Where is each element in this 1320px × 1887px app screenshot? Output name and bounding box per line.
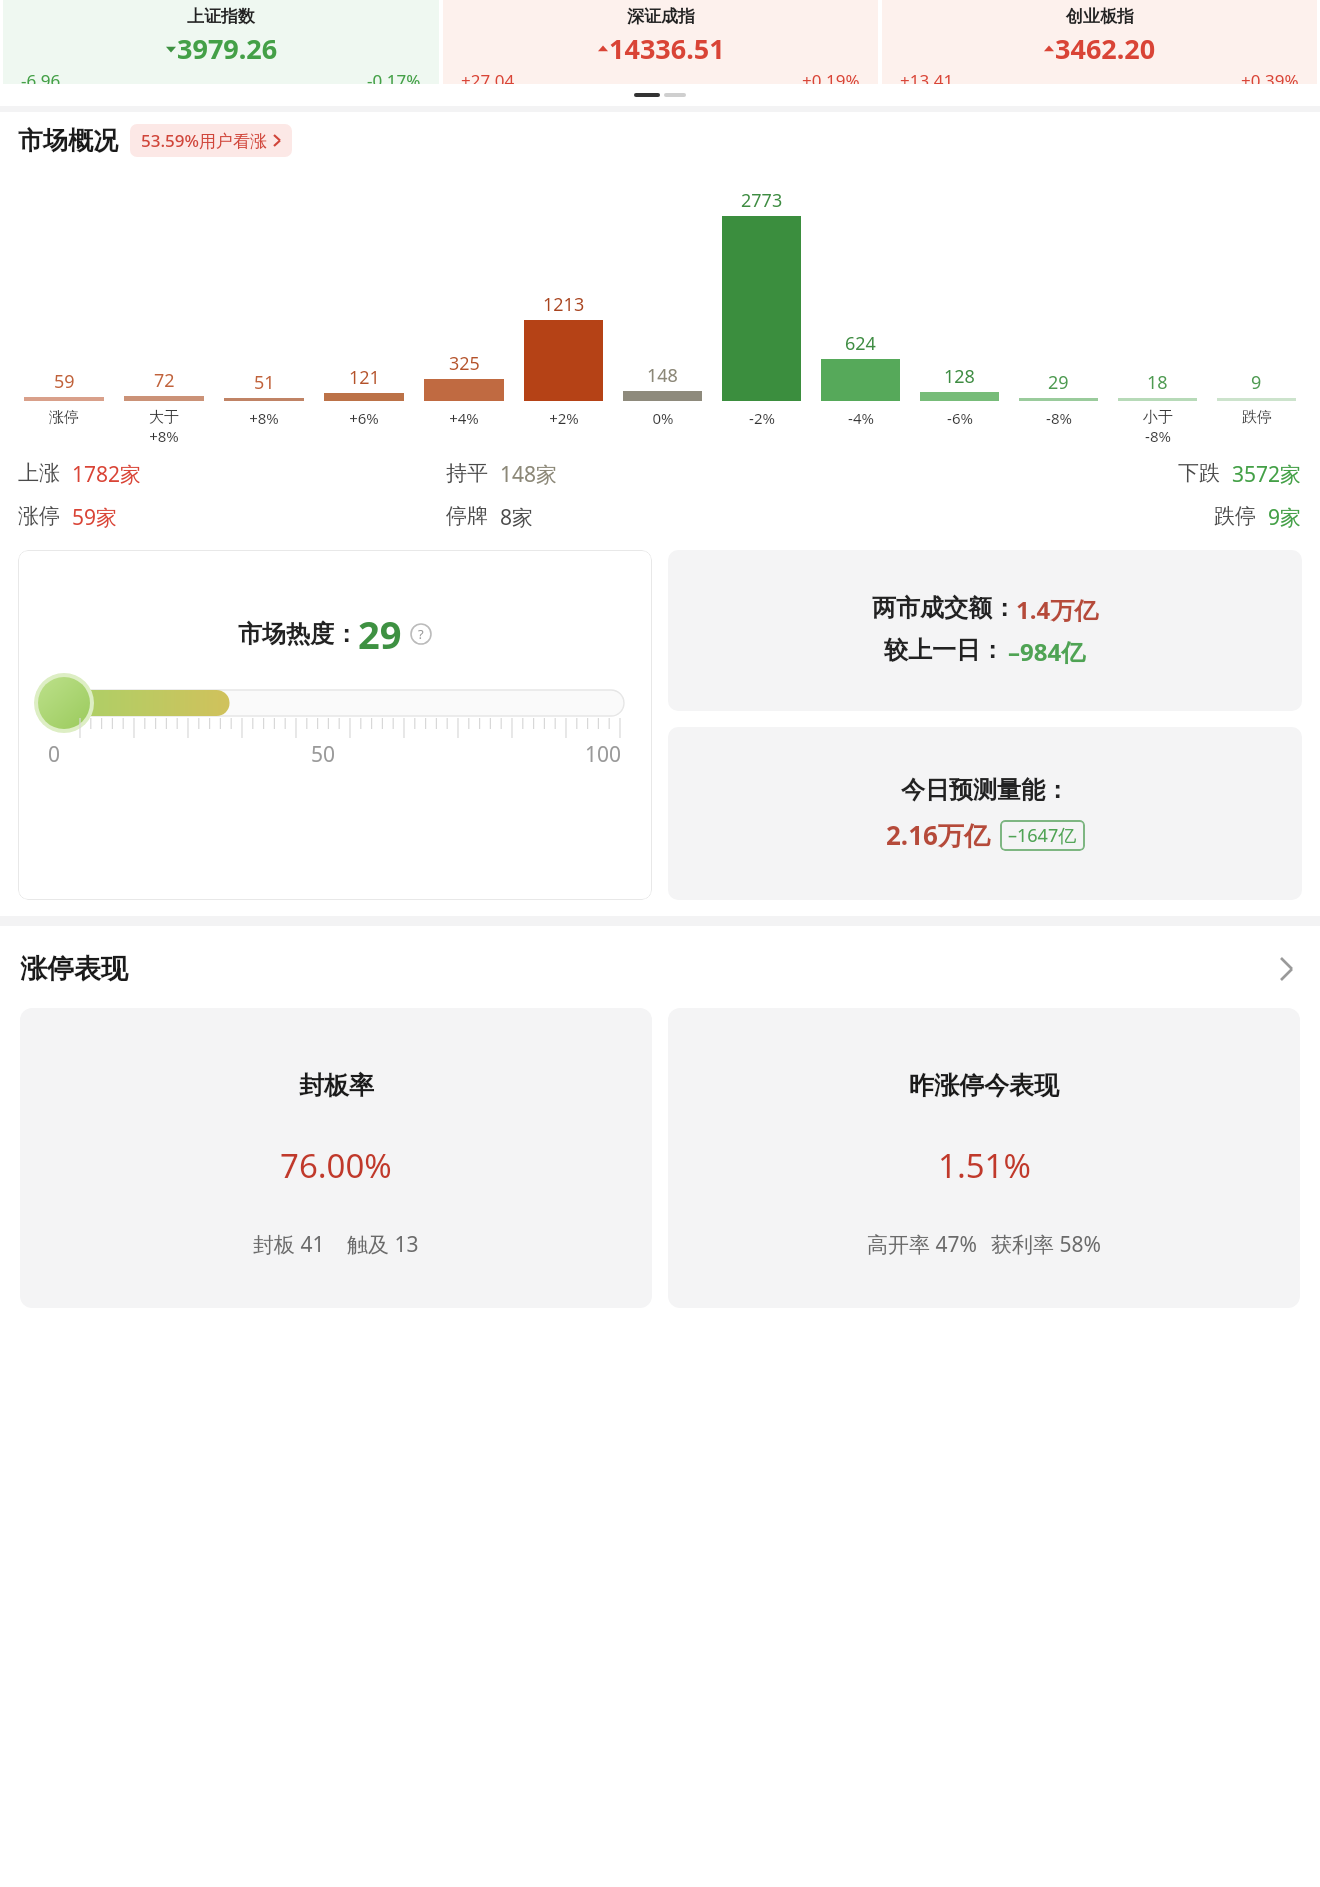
button[interactable]: 涨停表现 xyxy=(0,952,1320,986)
staticText: 0 xyxy=(48,740,61,769)
staticText: +6% xyxy=(349,408,379,428)
staticText: -6.96 xyxy=(21,69,61,84)
staticText: 128 xyxy=(944,364,975,389)
button[interactable]: 创业板指 xyxy=(882,0,1317,84)
staticText: +0.19% xyxy=(802,69,860,84)
staticText: 72 xyxy=(154,368,175,393)
staticText: -8% xyxy=(1046,408,1072,428)
staticText: -0.17% xyxy=(367,69,421,84)
button[interactable]: 今日预测量能： xyxy=(668,727,1302,900)
staticText: 51 xyxy=(254,370,275,395)
staticText: 8家 xyxy=(500,503,534,532)
staticText: 涨停 xyxy=(18,503,60,529)
button[interactable]: 封板率 xyxy=(20,1008,652,1308)
staticText: 1782家 xyxy=(72,460,142,489)
button[interactable]: 两市成交额： xyxy=(668,550,1302,711)
staticText: 53.59%用户看涨 xyxy=(141,129,268,152)
button[interactable]: 53.59%用户看涨 xyxy=(130,124,292,157)
staticText: 今日预测量能： xyxy=(901,775,1069,805)
staticText: 148家 xyxy=(500,460,558,489)
staticText: 325 xyxy=(449,351,480,376)
staticText: 29 xyxy=(358,608,402,660)
staticText: 59家 xyxy=(72,503,118,532)
staticText: 昨涨停今表现 xyxy=(909,1070,1059,1101)
button[interactable]: 说明 xyxy=(410,623,432,645)
staticText: 2773 xyxy=(741,188,783,213)
staticText: 3979.26 xyxy=(177,30,278,67)
staticText: 上涨 xyxy=(18,460,60,486)
staticText: -4% xyxy=(848,408,874,428)
staticText: +4% xyxy=(449,408,479,428)
staticText: 9家 xyxy=(1268,503,1302,532)
button[interactable]: 市场热度： xyxy=(18,550,652,900)
staticText: +27.04 xyxy=(461,69,515,84)
staticText: 跌停 xyxy=(1214,503,1256,529)
staticText: 触及 13 xyxy=(347,1230,419,1259)
staticText: +13.41 xyxy=(900,69,954,84)
staticText: 2.16万亿 xyxy=(886,817,990,853)
staticText: 59 xyxy=(54,369,75,394)
staticText: 市场热度： xyxy=(238,619,358,649)
staticText: 3572家 xyxy=(1232,460,1302,489)
staticText: 1.4万亿 xyxy=(1016,593,1099,626)
staticText: -6% xyxy=(947,408,973,428)
other: 查看更多 xyxy=(1272,955,1300,983)
staticText: 1213 xyxy=(543,292,585,317)
staticText: 1.51% xyxy=(938,1143,1031,1188)
staticText: –1647亿 xyxy=(1008,823,1077,848)
staticText: 封板 41 xyxy=(253,1230,325,1259)
staticText: 停牌 xyxy=(446,503,488,529)
staticText: 121 xyxy=(349,365,380,390)
staticText: 持平 xyxy=(446,460,488,486)
staticText: –984亿 xyxy=(1008,635,1086,668)
staticText: 封板率 xyxy=(299,1070,374,1101)
staticText: 跌停 xyxy=(1242,408,1272,427)
staticText: 市场概况 xyxy=(18,125,118,156)
staticText: -2% xyxy=(749,408,775,428)
staticText: 创业板指 xyxy=(1066,6,1134,27)
staticText: 下跌 xyxy=(1178,460,1220,486)
staticText: 76.00% xyxy=(280,1143,392,1188)
button[interactable]: 昨涨停今表现 xyxy=(668,1008,1300,1308)
staticText: 3462.20 xyxy=(1055,30,1156,67)
staticText: 100 xyxy=(585,740,622,769)
staticText: 小于 -8% xyxy=(1143,408,1173,446)
staticText: 9 xyxy=(1251,370,1262,395)
staticText: 涨停 xyxy=(49,408,79,427)
staticText: 18 xyxy=(1147,370,1168,395)
button[interactable]: 上证指数 xyxy=(3,0,439,84)
staticText: +0.39% xyxy=(1241,69,1299,84)
staticText: 148 xyxy=(647,363,678,388)
staticText: 29 xyxy=(1048,370,1069,395)
staticText: 两市成交额： xyxy=(872,593,1016,623)
staticText: +2% xyxy=(549,408,579,428)
staticText: 大于 +8% xyxy=(149,408,179,446)
staticText: 涨停表现 xyxy=(20,952,128,986)
button[interactable]: 深证成指 xyxy=(443,0,878,84)
staticText: ? xyxy=(418,625,424,643)
staticText: 50 xyxy=(311,740,336,769)
staticText: 较上一日： xyxy=(884,635,1004,665)
staticText: 上证指数 xyxy=(187,6,255,27)
staticText: 0% xyxy=(652,408,674,428)
staticText: 获利率 58% xyxy=(991,1230,1101,1259)
staticText: 高开率 47% xyxy=(867,1230,977,1259)
staticText: 624 xyxy=(845,331,876,356)
staticText: +8% xyxy=(249,408,279,428)
staticText: 14336.51 xyxy=(609,30,725,67)
staticText: 深证成指 xyxy=(627,6,695,27)
